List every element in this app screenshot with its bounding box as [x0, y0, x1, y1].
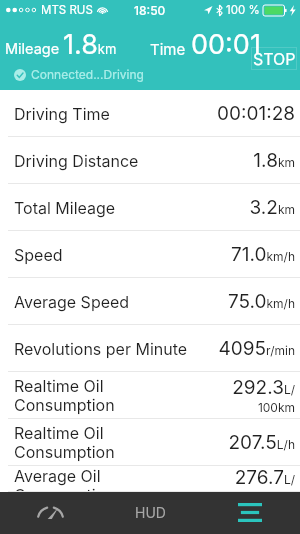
staticText: Total Mileage	[14, 198, 194, 217]
staticText: Connected...Driving	[31, 67, 144, 82]
staticText: Driving Distance	[14, 151, 194, 170]
staticText: 71.0km/h	[213, 243, 295, 266]
button[interactable]: Average Oil Consumption	[0, 466, 300, 492]
button[interactable]: Menu	[200, 492, 300, 534]
button[interactable]: STOP	[251, 47, 297, 70]
staticText: Average Speed	[14, 292, 194, 311]
staticText: 18:50	[134, 3, 166, 18]
staticText: MTS RUS	[41, 3, 93, 17]
staticText: Revolutions per Minute	[14, 339, 194, 358]
staticText: HUD	[135, 504, 166, 521]
staticText: Mileage	[5, 40, 60, 58]
staticText: 1.8km	[63, 28, 117, 61]
staticText: 4095r/min	[213, 337, 295, 360]
button[interactable]: Average Speed	[0, 278, 300, 325]
button[interactable]: Revolutions per Minute	[0, 325, 300, 372]
button[interactable]: Dashboard	[0, 492, 100, 534]
button[interactable]: Realtime Oil Consumption	[0, 372, 300, 419]
staticText: Speed	[14, 245, 194, 264]
staticText: 3.2km	[213, 196, 295, 219]
staticText: STOP	[253, 49, 296, 68]
staticText: Average Oil Consumption	[14, 466, 194, 491]
button[interactable]: Total Mileage	[0, 184, 300, 231]
button[interactable]: Driving Time	[0, 90, 300, 137]
staticText: Driving Time	[14, 104, 194, 123]
staticText: Realtime Oil Consumption	[14, 423, 194, 462]
staticText: 1.8km	[213, 149, 295, 172]
staticText: 292.3L/100km	[213, 376, 295, 415]
staticText: Realtime Oil Consumption	[14, 376, 194, 415]
staticText: 00:01	[191, 28, 261, 61]
button[interactable]: Driving Distance	[0, 137, 300, 184]
staticText: Time	[150, 40, 186, 58]
button[interactable]: Speed	[0, 231, 300, 278]
staticText: 100 %	[226, 3, 260, 17]
staticText: 75.0km/h	[213, 290, 295, 313]
staticText: 276.7L/100km	[213, 466, 295, 491]
staticText: 00:01:28	[213, 102, 295, 125]
staticText: 207.5L/h	[213, 431, 295, 454]
button[interactable]: Realtime Oil Consumption	[0, 419, 300, 466]
button[interactable]: HUD	[100, 492, 200, 534]
